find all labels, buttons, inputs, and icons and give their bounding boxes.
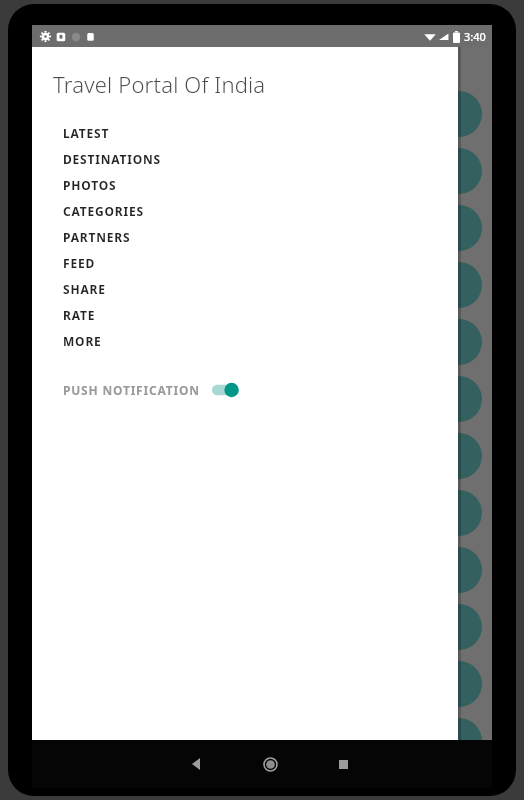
button[interactable]: FEED [32,250,458,276]
button[interactable]: LATEST [32,120,458,146]
button[interactable]: RATE [32,302,458,328]
button[interactable] [50,604,482,650]
button[interactable]: Home [246,740,294,788]
staticText: DESTINATIONS [63,151,161,167]
button[interactable] [50,490,482,536]
button[interactable] [50,718,482,764]
button[interactable] [50,148,482,194]
button[interactable]: PARTNERS [32,224,458,250]
staticText: RATE [63,307,96,323]
staticText: MORE [63,333,102,349]
staticText: 3:40 [464,29,486,44]
staticText: PHOTOS [63,177,117,193]
staticText: Travel Portal Of India [53,69,266,99]
button[interactable] [50,205,482,251]
staticText: CATEGORIES [63,203,144,219]
staticText: PARTNERS [63,229,131,245]
button[interactable]: CATEGORIES [32,198,458,224]
button[interactable]: SHARE [32,276,458,302]
button[interactable]: Recent apps [319,740,367,788]
button[interactable] [50,319,482,365]
button[interactable]: DESTINATIONS [32,146,458,172]
button[interactable] [50,262,482,308]
button[interactable]: PHOTOS [32,172,458,198]
staticText: SHARE [63,281,106,297]
staticText: FEED [63,255,96,271]
button[interactable]: Push notification toggle [212,380,242,400]
staticText: PUSH NOTIFICATION [63,382,200,398]
button[interactable]: PUSH NOTIFICATION [32,376,458,404]
button[interactable] [50,376,482,422]
button[interactable] [50,91,482,137]
button[interactable] [50,661,482,707]
button[interactable] [50,547,482,593]
button[interactable]: MORE [32,328,458,354]
staticText: LATEST [63,125,110,141]
button[interactable]: Back [173,740,221,788]
button[interactable] [50,433,482,479]
